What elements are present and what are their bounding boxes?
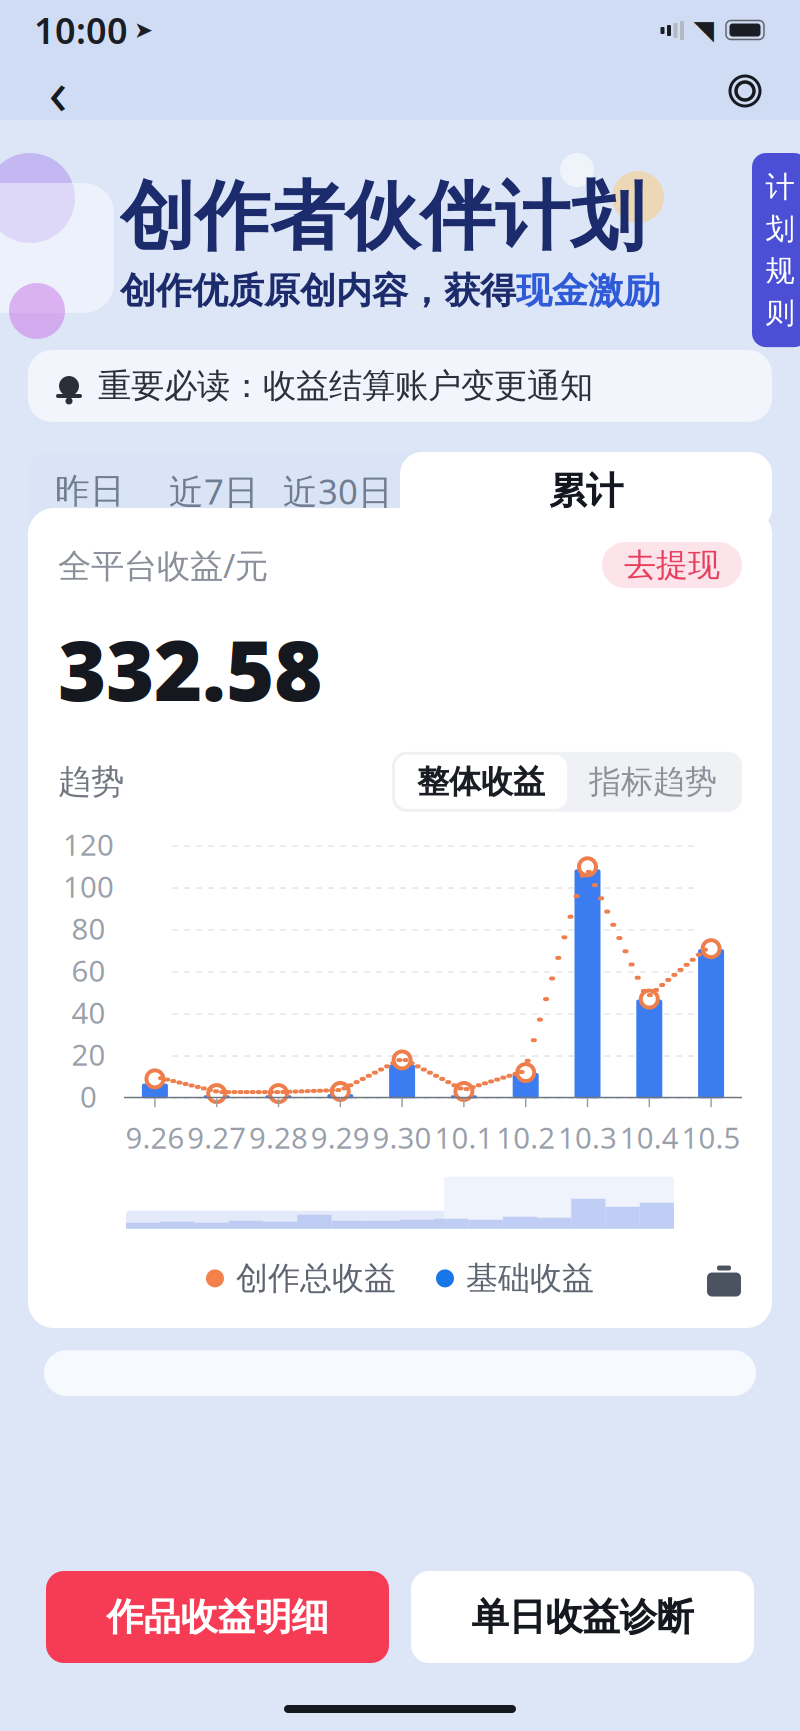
staticText: 作品收益明细 xyxy=(106,1594,328,1640)
staticText: 0 xyxy=(80,1077,97,1116)
staticText: 20 xyxy=(71,1035,105,1074)
button[interactable]: 去提现 xyxy=(602,542,742,588)
button[interactable]: 累计 xyxy=(400,452,772,530)
staticText: ‹ xyxy=(48,50,67,132)
staticText: 趋势 xyxy=(58,761,124,802)
staticText: 昨日 xyxy=(55,470,125,512)
button[interactable]: Settings xyxy=(720,66,770,116)
button[interactable]: 计 xyxy=(752,153,800,347)
staticText: 10.4 xyxy=(620,1118,679,1157)
staticText: 重要必读：收益结算账户变更通知 xyxy=(98,365,593,406)
staticText: 9.28 xyxy=(249,1118,308,1157)
staticText: 累计 xyxy=(549,468,623,514)
staticText: 10.3 xyxy=(558,1118,617,1157)
staticText: 现金激励 xyxy=(516,269,660,313)
staticText: 基础收益 xyxy=(466,1259,594,1298)
staticText: 120 xyxy=(63,825,114,864)
button[interactable]: 作品收益明细 xyxy=(46,1571,389,1663)
button[interactable]: 重要必读：收益结算账户变更通知 xyxy=(28,350,772,422)
staticText: 近30日 xyxy=(283,468,393,514)
button[interactable]: 近7日 xyxy=(152,452,276,530)
staticText: 9.30 xyxy=(373,1118,432,1157)
button[interactable]: 整体收益 xyxy=(395,755,567,809)
button[interactable]: 单日收益诊断 xyxy=(411,1571,754,1663)
staticText: 去提现 xyxy=(624,545,720,585)
button[interactable]: Back xyxy=(30,63,86,119)
staticText: 10.1 xyxy=(434,1118,493,1157)
button[interactable]: 昨日 xyxy=(28,452,152,530)
staticText: 近7日 xyxy=(169,468,259,514)
staticText: 指标趋势 xyxy=(589,762,717,801)
staticText: ➤ xyxy=(134,17,153,43)
staticText: 整体收益 xyxy=(417,762,545,801)
staticText: 规 xyxy=(765,253,794,289)
staticText: 创作总收益 xyxy=(236,1259,396,1298)
staticText: 80 xyxy=(71,909,105,948)
staticText: 332.58 xyxy=(58,614,322,724)
staticText: 创作优质原创内容，获得 xyxy=(120,269,516,313)
staticText: 60 xyxy=(71,951,105,990)
staticText: 9.26 xyxy=(125,1118,184,1157)
staticText: 单日收益诊断 xyxy=(471,1594,693,1640)
staticText: 全平台收益/元 xyxy=(58,543,268,587)
staticText: 9.29 xyxy=(311,1118,370,1157)
button[interactable]: Camera xyxy=(682,1239,766,1323)
staticText: 9.27 xyxy=(187,1118,246,1157)
staticText: 计 xyxy=(765,169,794,205)
staticText: 则 xyxy=(765,295,794,331)
staticText: 10.5 xyxy=(682,1118,741,1157)
staticText: ◥ xyxy=(693,15,714,45)
staticText: 划 xyxy=(765,211,794,247)
button[interactable]: 近30日 xyxy=(276,452,400,530)
staticText: 10:00 xyxy=(34,6,128,54)
staticText: 100 xyxy=(63,867,114,906)
staticText: 创作者伙伴计划 xyxy=(120,171,645,263)
button[interactable]: 指标趋势 xyxy=(567,755,739,809)
staticText: 10.2 xyxy=(496,1118,555,1157)
staticText: 40 xyxy=(71,993,105,1032)
